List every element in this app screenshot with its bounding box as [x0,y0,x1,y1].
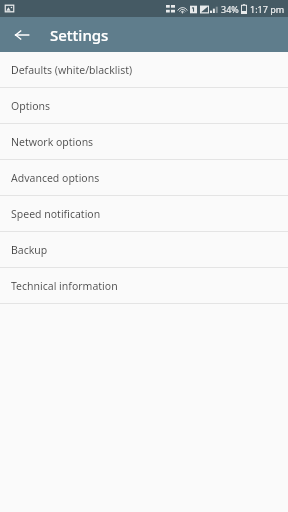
staticText: Backup [11,243,48,257]
staticText: Network options [11,135,94,149]
button[interactable]: Network options [0,124,288,159]
button[interactable]: Advanced options [0,160,288,195]
staticText: Speed notification [11,207,101,221]
button[interactable]: Back [8,21,36,49]
staticText: Defaults (white/blacklist) [11,63,133,77]
staticText: 1:17 pm [250,3,285,15]
button[interactable]: Options [0,88,288,123]
staticText: Options [11,99,51,113]
staticText: Advanced options [11,171,100,185]
staticText: 34% [221,3,239,15]
button[interactable]: Backup [0,232,288,267]
staticText: Technical information [11,279,118,293]
staticText: Settings [50,25,109,45]
button[interactable]: Defaults (white/blacklist) [0,52,288,87]
button[interactable]: Speed notification [0,196,288,231]
button[interactable]: Technical information [0,268,288,303]
